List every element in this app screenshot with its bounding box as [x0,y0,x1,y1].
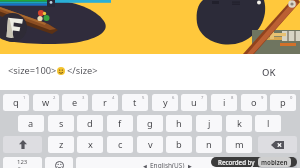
button[interactable]: u [181,94,207,111]
staticText: 9 [261,95,264,101]
button[interactable]: o [241,94,267,111]
staticText: 1 [23,95,26,101]
button[interactable]: e [62,94,88,111]
staticText: x [88,138,93,151]
button[interactable]: j [196,115,222,132]
staticText: ◀ [143,163,147,168]
button[interactable]: p [270,94,296,111]
button[interactable]: c [107,136,133,153]
button[interactable]: d [77,115,103,132]
staticText: k [237,117,242,130]
staticText: v [148,138,153,151]
button[interactable]: Backspace [258,136,297,153]
button[interactable]: b [166,136,192,153]
staticText: z [59,138,64,151]
button[interactable]: i [211,94,237,111]
staticText: mobizen [261,158,288,166]
staticText: </size> [67,64,98,77]
staticText: 2 [53,95,56,101]
staticText: u [191,96,197,109]
button[interactable]: Enter [261,157,297,168]
staticText: English(US) [150,161,185,168]
staticText: 123 [17,158,28,166]
staticText: 5 [142,95,145,101]
staticText: m [235,138,244,151]
staticText: d [87,117,93,130]
staticText: 4 [112,95,115,101]
button[interactable]: m [226,136,252,153]
staticText: t [133,96,137,109]
button[interactable]: v [137,136,163,153]
staticText: s [59,117,64,130]
staticText: 3 [82,95,85,101]
button[interactable]: s [48,115,74,132]
button[interactable]: y [152,94,178,111]
button[interactable]: l [255,115,281,132]
button[interactable]: q [3,94,29,111]
staticText: l [267,117,270,130]
button[interactable]: w [33,94,59,111]
button[interactable]: k [226,115,252,132]
button[interactable]: Shift [3,136,42,153]
staticText: i [223,96,226,109]
staticText: n [206,138,212,151]
button[interactable]: f [107,115,133,132]
staticText: OK [262,66,276,79]
staticText: 0 [290,95,293,101]
staticText: j [208,117,211,130]
button[interactable]: x [77,136,103,153]
staticText: g [147,117,153,130]
button[interactable]: g [137,115,163,132]
staticText: 7 [201,95,204,101]
staticText: ▶ [188,163,192,168]
button[interactable]: Emoji [45,157,73,168]
staticText: 6 [172,95,175,101]
button[interactable]: a [18,115,44,132]
button[interactable]: OK [262,66,276,79]
button[interactable]: n [196,136,222,153]
staticText: Sym [18,166,28,168]
button[interactable]: h [166,115,192,132]
button[interactable]: 123 [3,157,42,168]
staticText: h [176,117,182,130]
button[interactable]: z [48,136,74,153]
staticText: r [103,96,107,109]
staticText: <size=100> [8,64,57,77]
staticText: Recorded by [218,158,255,166]
button[interactable]: t [122,94,148,111]
staticText: e [72,96,78,109]
staticText: b [176,138,182,151]
staticText: q [13,96,19,109]
staticText: o [251,96,257,109]
button[interactable]: ◀ [76,157,258,168]
button[interactable]: r [92,94,118,111]
staticText: p [280,96,286,109]
staticText: w [42,96,50,109]
staticText: a [28,117,34,130]
staticText: 8 [231,95,234,101]
staticText: y [163,96,168,109]
staticText: c [118,138,123,151]
staticText: f [118,117,122,130]
